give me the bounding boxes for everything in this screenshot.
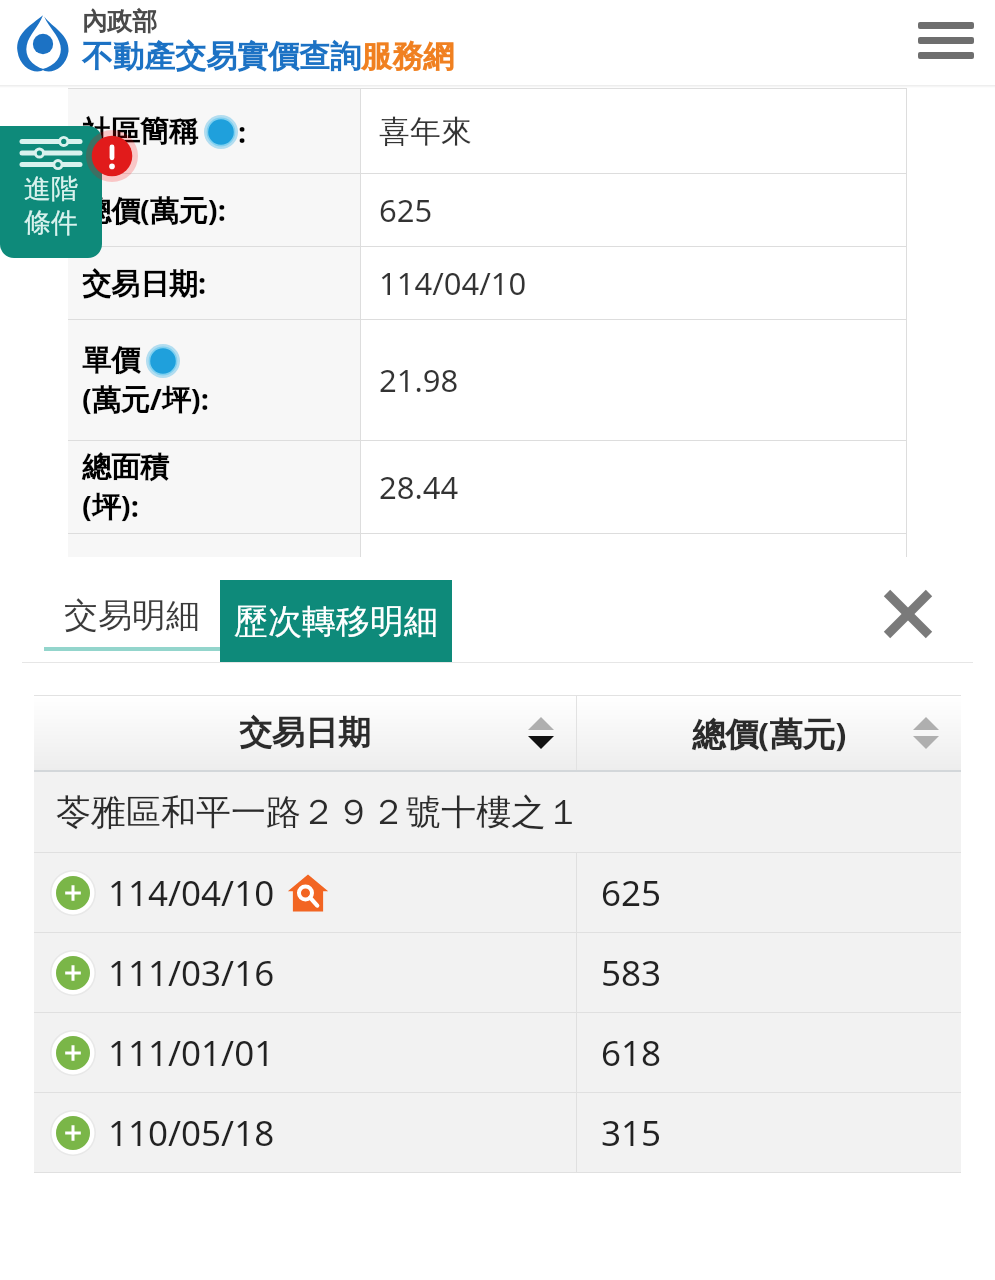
staticText: 社區簡稱 — [82, 113, 198, 150]
staticText: 315 — [601, 1109, 662, 1157]
staticText: 21.98 — [379, 359, 459, 401]
staticText: 歷次轉移明細 — [234, 600, 438, 643]
staticText: 625 — [379, 189, 433, 231]
staticText: 服務網 — [361, 37, 454, 76]
staticText: 總面積 — [82, 449, 169, 486]
staticText: 111/03/16 — [108, 949, 275, 997]
staticText: 條件 — [24, 206, 78, 240]
button[interactable]: Expand — [34, 1093, 961, 1172]
staticText: 總價(萬元): — [82, 190, 226, 230]
staticText: 111/01/01 — [108, 1029, 275, 1077]
button[interactable]: Expand — [34, 853, 961, 932]
button[interactable]: 總價(萬元) — [577, 696, 961, 770]
button[interactable]: Expand — [50, 870, 96, 916]
staticText: 114/04/10 — [379, 262, 527, 304]
staticText: 單價 — [82, 342, 140, 379]
staticText: : — [238, 112, 247, 151]
button[interactable]: Expand — [50, 1110, 96, 1156]
staticText: 苓雅區和平一路２９２號十樓之１ — [56, 790, 581, 834]
staticText: 625 — [601, 869, 662, 917]
staticText: (萬元/坪): — [82, 379, 209, 419]
button[interactable]: Expand — [34, 933, 961, 1012]
staticText: 總價(萬元) — [692, 711, 847, 756]
staticText: (坪): — [82, 486, 139, 526]
staticText: 交易日期: — [82, 263, 207, 303]
button[interactable]: Menu — [915, 13, 977, 75]
button[interactable]: Expand — [34, 1013, 961, 1092]
staticText: 583 — [601, 949, 662, 997]
staticText: 喜年來 — [379, 112, 472, 151]
staticText: 內政部 — [82, 6, 157, 37]
staticText: 28.44 — [379, 466, 459, 508]
button[interactable]: 進階條件 — [0, 126, 102, 258]
staticText: 不動產交易實價查詢 — [82, 37, 361, 76]
button[interactable]: 交易明細 — [44, 582, 220, 662]
button[interactable]: Close — [877, 583, 939, 645]
staticText: 114/04/10 — [108, 869, 275, 917]
button[interactable]: Expand — [50, 950, 96, 996]
staticText: 交易日期 — [239, 712, 371, 754]
staticText: 618 — [601, 1029, 662, 1077]
staticText: 110/05/18 — [108, 1109, 275, 1157]
staticText: 交易明細 — [64, 594, 200, 637]
button[interactable]: 歷次轉移明細 — [220, 580, 452, 662]
button[interactable]: Alert — [86, 130, 138, 182]
button[interactable]: Expand — [50, 1030, 96, 1076]
staticText: 進階 — [24, 172, 78, 206]
button[interactable]: 交易日期 — [34, 696, 576, 770]
button[interactable]: 查看地圖 — [285, 870, 331, 916]
